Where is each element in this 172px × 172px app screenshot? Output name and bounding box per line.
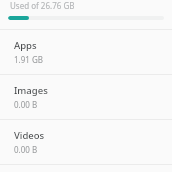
staticText: 1.91 GB bbox=[14, 54, 43, 65]
button[interactable]: Videos bbox=[0, 122, 172, 162]
button[interactable]: Apps bbox=[0, 32, 172, 72]
staticText: 0.00 B bbox=[14, 99, 38, 110]
staticText: Images bbox=[14, 84, 48, 97]
staticText: 0.00 B bbox=[14, 144, 38, 155]
staticText: Used of 26.76 GB bbox=[10, 0, 75, 10]
staticText: Apps bbox=[14, 39, 37, 52]
staticText: Videos bbox=[14, 129, 45, 142]
button[interactable]: Images bbox=[0, 77, 172, 117]
